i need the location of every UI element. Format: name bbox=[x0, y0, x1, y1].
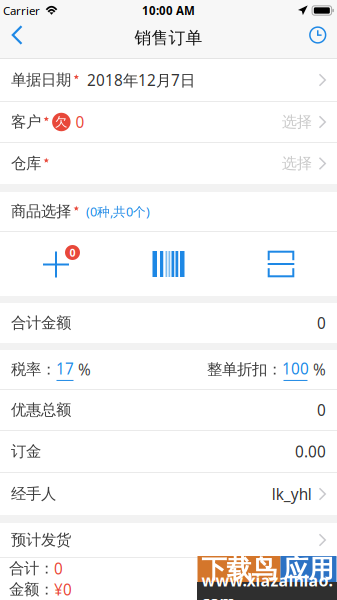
staticText: 选择 bbox=[282, 112, 312, 132]
button[interactable]: 单据日期 bbox=[0, 59, 337, 102]
button[interactable]: Scan barcode bbox=[112, 232, 225, 296]
staticText: 整单折扣： bbox=[207, 360, 282, 379]
staticText: 下载鸟 bbox=[201, 553, 276, 584]
staticText: 单据日期 bbox=[11, 70, 71, 90]
staticText: 0 bbox=[69, 245, 75, 260]
staticText: 0 bbox=[317, 313, 326, 333]
staticText: 客户 bbox=[11, 112, 41, 132]
staticText: 2018年12月7日 bbox=[87, 70, 195, 90]
staticText: 0 bbox=[76, 112, 85, 132]
staticText: Carrier bbox=[3, 3, 40, 18]
staticText: 商品选择 bbox=[11, 202, 71, 221]
staticText: 合计： bbox=[9, 559, 54, 578]
staticText: 销售订单 bbox=[134, 27, 202, 49]
staticText: 应用 bbox=[283, 553, 333, 584]
staticText: 0 bbox=[317, 400, 326, 420]
button[interactable]: 经手人 bbox=[0, 473, 337, 515]
staticText: 欠 bbox=[55, 114, 68, 130]
staticText: 仓库 bbox=[11, 154, 41, 173]
staticText: 优惠总额 bbox=[11, 400, 71, 420]
button[interactable]: 仓库 bbox=[0, 143, 337, 184]
staticText: lk_yhl bbox=[272, 484, 312, 504]
staticText: 税率： bbox=[11, 360, 56, 379]
staticText: 0.00 bbox=[295, 441, 326, 462]
staticText: 17 bbox=[56, 358, 74, 379]
button[interactable]: 100 bbox=[282, 358, 309, 381]
button[interactable]: 客户 bbox=[0, 102, 337, 143]
button[interactable]: Add product bbox=[0, 232, 112, 296]
button[interactable]: 17 bbox=[56, 358, 74, 381]
staticText: 预计发货 bbox=[11, 530, 71, 550]
button[interactable]: Back bbox=[0, 24, 46, 46]
button[interactable]: 预计发货 bbox=[0, 523, 337, 558]
staticText: 订金 bbox=[11, 442, 41, 461]
staticText: 金额： bbox=[9, 580, 54, 599]
staticText: 合计金额 bbox=[11, 313, 71, 333]
staticText: ¥0 bbox=[54, 579, 72, 600]
button[interactable]: History bbox=[291, 24, 337, 46]
staticText: 经手人 bbox=[11, 484, 56, 504]
staticText: 选择 bbox=[282, 154, 312, 173]
staticText: 10:00 AM bbox=[142, 3, 195, 18]
staticText: 100 bbox=[282, 358, 309, 379]
staticText: % bbox=[74, 359, 91, 380]
staticText: www.xiazainiao.com bbox=[201, 570, 332, 600]
staticText: (0种,共0个) bbox=[86, 203, 150, 220]
button[interactable]: Scan code bbox=[225, 232, 337, 296]
staticText: % bbox=[309, 359, 326, 380]
staticText: 0 bbox=[54, 558, 63, 579]
